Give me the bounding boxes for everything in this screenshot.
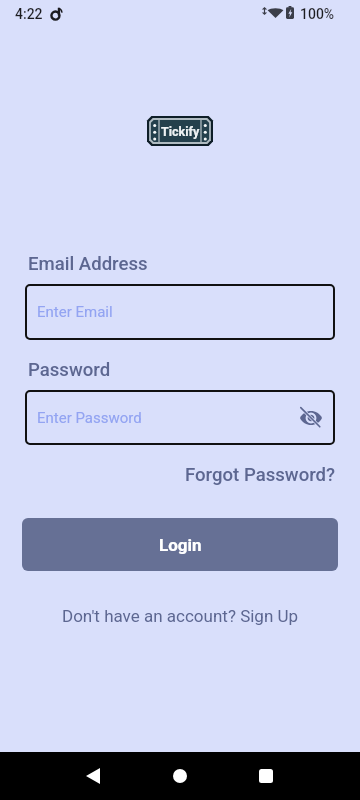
staticText: Login <box>159 535 202 555</box>
staticText: Tickify <box>161 124 200 139</box>
staticText: Email Address <box>28 253 148 275</box>
button[interactable]: Home <box>145 752 215 800</box>
staticText: Enter Email <box>37 303 113 321</box>
button[interactable]: Login <box>22 518 338 571</box>
staticText: Forgot Password? <box>185 464 336 486</box>
button[interactable]: Don't have an account? Sign Up <box>62 606 299 626</box>
staticText: 4:22 <box>15 6 43 22</box>
button[interactable]: Back <box>58 752 128 800</box>
button[interactable]: Forgot Password? <box>185 464 336 486</box>
other: Tickify logo <box>147 116 213 146</box>
staticText: Password <box>28 359 111 381</box>
staticText: 100% <box>300 6 335 22</box>
button[interactable]: Enter Email <box>25 284 335 340</box>
button[interactable]: Recent apps <box>231 752 301 800</box>
button[interactable]: Enter Password <box>25 390 335 445</box>
button[interactable]: Show password <box>297 404 325 432</box>
staticText: Enter Password <box>37 409 142 427</box>
